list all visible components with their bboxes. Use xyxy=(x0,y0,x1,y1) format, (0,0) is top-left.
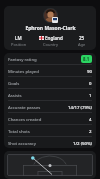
staticText: LM xyxy=(15,35,22,41)
staticText: Position xyxy=(11,42,27,47)
staticText: Shot accuracy xyxy=(8,140,73,146)
staticText: 4 xyxy=(89,116,92,122)
staticText: 2 xyxy=(89,128,92,134)
staticText: Country xyxy=(43,42,59,47)
staticText: Ephron Mason-Clark xyxy=(25,25,76,32)
button[interactable]: LM xyxy=(4,35,33,47)
staticText: Total shots xyxy=(8,128,89,134)
button[interactable]: Chances created xyxy=(4,113,96,124)
staticText: 0 xyxy=(89,80,92,86)
staticText: 1/2 (50%) xyxy=(73,140,92,146)
button[interactable]: Fantasy rating xyxy=(4,53,96,64)
staticText: Minutes played xyxy=(8,68,87,74)
staticText: Assists xyxy=(8,92,89,98)
staticText: 25 xyxy=(79,35,85,41)
staticText: Chances created xyxy=(8,116,89,122)
staticText: 8.1 xyxy=(83,56,90,62)
button[interactable]: Goals xyxy=(4,77,96,88)
button[interactable]: 25 xyxy=(68,35,96,47)
staticText: 14/17 (79%) xyxy=(68,104,92,110)
staticText: Fantasy rating xyxy=(8,56,81,62)
button[interactable]: Player photo xyxy=(4,6,96,50)
staticText: 1 xyxy=(89,92,92,98)
button[interactable]: Assists xyxy=(4,89,96,100)
button[interactable]: Minutes played xyxy=(4,65,96,76)
button[interactable]: Total shots xyxy=(4,125,96,136)
staticText: Accurate passes xyxy=(8,104,68,110)
staticText: 90 xyxy=(87,68,92,74)
button[interactable]: Shot map xyxy=(4,151,96,179)
staticText: England xyxy=(45,35,63,41)
other: Player photo xyxy=(43,8,58,23)
button[interactable]: England xyxy=(33,35,68,47)
staticText: Goals xyxy=(8,80,89,86)
other: England xyxy=(39,36,44,40)
button[interactable]: Accurate passes xyxy=(4,101,96,112)
button[interactable]: Shot accuracy xyxy=(4,137,96,148)
staticText: Age xyxy=(78,42,86,47)
